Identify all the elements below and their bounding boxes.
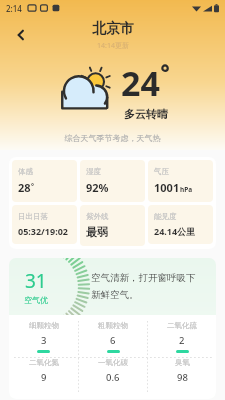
staticText: 6 bbox=[110, 334, 116, 347]
staticText: 北京市 bbox=[92, 20, 134, 38]
staticText: 新鲜空气。 bbox=[91, 289, 139, 301]
staticText: 3 bbox=[41, 334, 47, 347]
staticText: 最弱 bbox=[86, 225, 108, 239]
button[interactable]: 二氧化硫 bbox=[148, 321, 216, 353]
staticText: 多云转晴 bbox=[124, 107, 168, 121]
button[interactable]: 日出日落 bbox=[12, 205, 77, 244]
staticText: ° bbox=[31, 182, 34, 192]
button[interactable]: 二氧化氮 bbox=[9, 358, 78, 384]
staticText: 湿度 bbox=[86, 167, 101, 176]
button[interactable]: 体感 bbox=[12, 160, 77, 202]
button[interactable]: Back bbox=[8, 22, 34, 48]
staticText: 能见度 bbox=[154, 212, 177, 221]
staticText: 0.6 bbox=[106, 371, 120, 384]
staticText: 空气优 bbox=[24, 295, 48, 305]
button[interactable]: 一氧化碳 bbox=[79, 358, 147, 384]
staticText: 2:14 bbox=[6, 3, 22, 14]
staticText: 14:14更新 bbox=[97, 41, 129, 51]
staticText: 细颗粒物 bbox=[29, 321, 59, 330]
staticText: 24.14公里 bbox=[154, 225, 196, 237]
staticText: 紫外线 bbox=[86, 212, 109, 221]
staticText: 98 bbox=[177, 371, 188, 384]
staticText: 92% bbox=[86, 180, 109, 195]
staticText: 9 bbox=[41, 371, 47, 384]
staticText: 日出日落 bbox=[18, 212, 48, 221]
staticText: 体感 bbox=[18, 167, 33, 176]
button[interactable]: 粗颗粒物 bbox=[79, 321, 147, 353]
staticText: 2 bbox=[179, 334, 185, 347]
staticText: 气压 bbox=[154, 167, 169, 176]
button[interactable]: 湿度 bbox=[80, 160, 145, 202]
staticText: 24 bbox=[121, 60, 160, 106]
button[interactable]: 紫外线 bbox=[80, 205, 145, 246]
staticText: 31 bbox=[25, 268, 47, 294]
button[interactable]: 气压 bbox=[148, 160, 213, 202]
staticText: 05:32/19:02 bbox=[18, 225, 68, 237]
button[interactable]: 能见度 bbox=[148, 205, 213, 244]
button[interactable]: 31 bbox=[9, 258, 216, 399]
staticText: 28 bbox=[18, 180, 31, 195]
staticText: 臭氧 bbox=[175, 358, 190, 367]
staticText: 综合天气季节考虑，天气热 bbox=[0, 133, 225, 143]
staticText: 粗颗粒物 bbox=[98, 321, 128, 330]
staticText: 1001 bbox=[154, 180, 180, 195]
staticText: 二氧化硫 bbox=[167, 321, 197, 330]
button[interactable]: 细颗粒物 bbox=[9, 321, 78, 353]
staticText: hPa bbox=[180, 185, 193, 194]
staticText: 二氧化氮 bbox=[29, 358, 59, 367]
button[interactable]: 臭氧 bbox=[148, 358, 216, 384]
staticText: 空气清新，打开窗呼吸下 bbox=[91, 272, 196, 284]
staticText: 一氧化碳 bbox=[98, 358, 128, 367]
